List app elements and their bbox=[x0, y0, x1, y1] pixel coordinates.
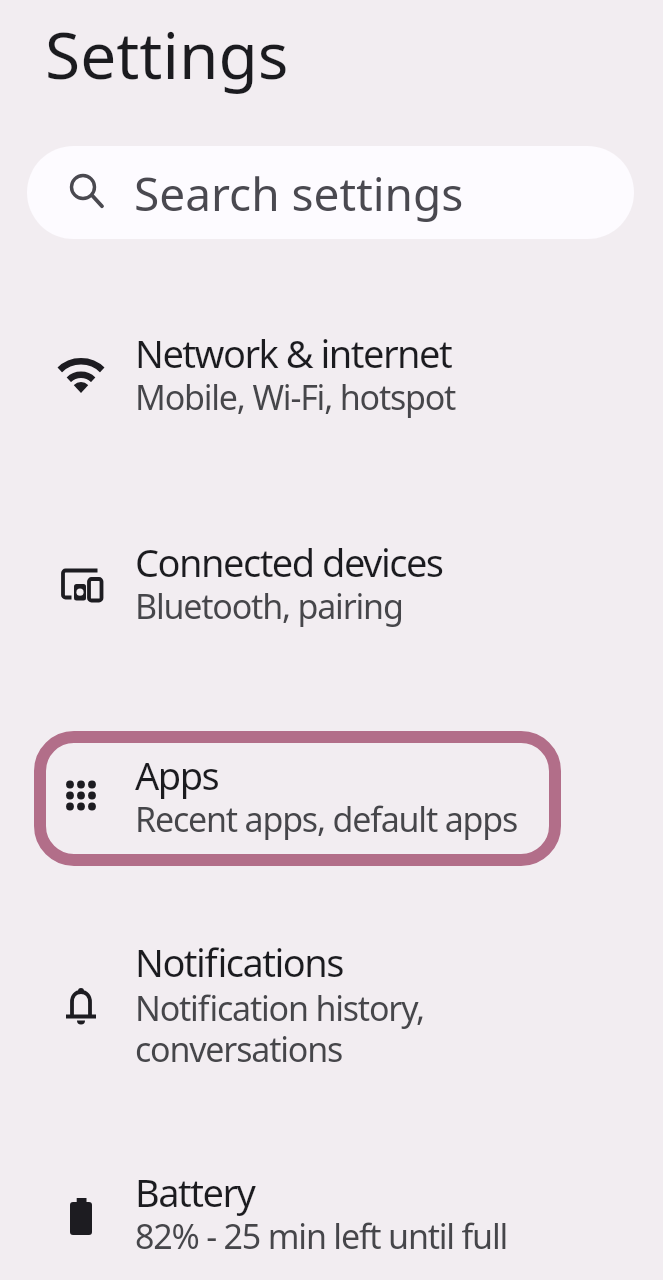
staticText: Connected devices bbox=[135, 536, 443, 588]
staticText: Mobile, Wi-Fi, hotspot bbox=[135, 374, 456, 420]
button[interactable] bbox=[27, 300, 636, 460]
button[interactable] bbox=[27, 146, 634, 239]
staticText: Settings bbox=[45, 11, 289, 98]
staticText: 82% - 25 min left until full bbox=[135, 1213, 508, 1259]
button[interactable] bbox=[27, 725, 636, 875]
staticText: Recent apps, default apps bbox=[135, 796, 518, 842]
button[interactable] bbox=[27, 915, 636, 1095]
staticText: Search settings bbox=[134, 162, 464, 225]
staticText: Notification history, bbox=[135, 985, 424, 1031]
staticText: Apps bbox=[135, 749, 219, 801]
staticText: Battery bbox=[135, 1166, 255, 1218]
staticText: Network & internet bbox=[135, 327, 452, 379]
staticText: Bluetooth, pairing bbox=[135, 583, 403, 629]
button[interactable] bbox=[27, 1150, 636, 1280]
button[interactable] bbox=[27, 510, 636, 670]
staticText: conversations bbox=[135, 1026, 343, 1072]
staticText: Notifications bbox=[135, 936, 344, 988]
